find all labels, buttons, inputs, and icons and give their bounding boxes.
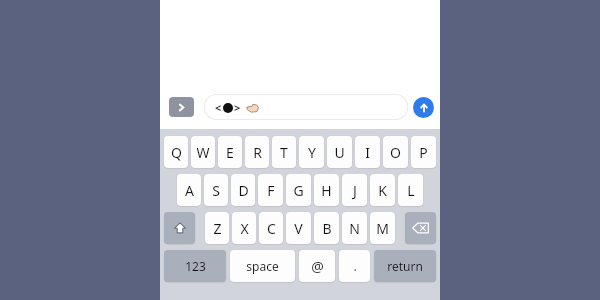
button[interactable]: D bbox=[231, 174, 255, 206]
button[interactable]: Z bbox=[205, 212, 229, 244]
staticText: D bbox=[238, 181, 249, 200]
staticText: B bbox=[322, 219, 332, 238]
button[interactable]: W bbox=[191, 136, 215, 168]
staticText: I bbox=[365, 143, 370, 162]
button[interactable]: F bbox=[258, 174, 283, 206]
button[interactable]: . bbox=[339, 250, 370, 282]
staticText: L bbox=[407, 181, 415, 200]
button[interactable]: C bbox=[259, 212, 283, 244]
staticText: > bbox=[234, 100, 241, 115]
button[interactable]: Q bbox=[164, 136, 188, 168]
button[interactable]: H bbox=[314, 174, 339, 206]
button[interactable]: space bbox=[230, 250, 295, 282]
staticText: K bbox=[378, 181, 387, 200]
button[interactable]: P bbox=[411, 136, 436, 168]
button[interactable]: N bbox=[342, 212, 367, 244]
staticText: S bbox=[212, 181, 220, 200]
button[interactable]: Shift bbox=[164, 212, 195, 244]
button[interactable]: M bbox=[370, 212, 395, 244]
staticText: Z bbox=[213, 219, 222, 238]
button[interactable]: A bbox=[177, 174, 201, 206]
staticText: R bbox=[253, 143, 262, 162]
staticText: @ bbox=[311, 257, 324, 276]
staticText: N bbox=[349, 219, 360, 238]
staticText: < bbox=[215, 100, 222, 115]
button[interactable]: Send bbox=[413, 97, 434, 118]
staticText: . bbox=[353, 258, 357, 274]
staticText: H bbox=[321, 181, 332, 200]
button[interactable]: S bbox=[204, 174, 228, 206]
button[interactable]: L bbox=[398, 174, 423, 206]
staticText: X bbox=[240, 219, 249, 238]
button[interactable]: G bbox=[286, 174, 311, 206]
staticText: Q bbox=[171, 143, 182, 162]
staticText: A bbox=[185, 181, 194, 200]
staticText: T bbox=[280, 143, 288, 162]
button[interactable]: K bbox=[370, 174, 395, 206]
button[interactable]: O bbox=[383, 136, 408, 168]
button[interactable]: R bbox=[245, 136, 269, 168]
staticText: Y bbox=[308, 143, 316, 162]
button[interactable]: Backspace bbox=[405, 212, 436, 244]
staticText: 123 bbox=[185, 258, 206, 274]
staticText: G bbox=[293, 181, 304, 200]
staticText: V bbox=[294, 219, 303, 238]
staticText: W bbox=[196, 143, 210, 162]
button[interactable]: X bbox=[232, 212, 256, 244]
button[interactable]: return bbox=[374, 250, 436, 282]
staticText: J bbox=[353, 181, 357, 200]
button[interactable]: E bbox=[218, 136, 242, 168]
staticText: space bbox=[246, 258, 279, 274]
button[interactable]: @ bbox=[299, 250, 335, 282]
staticText: U bbox=[334, 143, 345, 162]
staticText: O bbox=[390, 143, 401, 162]
staticText: E bbox=[226, 143, 234, 162]
button[interactable]: T bbox=[272, 136, 296, 168]
staticText: M bbox=[376, 219, 389, 238]
staticText: return bbox=[387, 258, 423, 274]
button[interactable]: U bbox=[327, 136, 352, 168]
staticText: C bbox=[267, 219, 276, 238]
button[interactable]: I bbox=[355, 136, 380, 168]
button[interactable]: Expand toolbar bbox=[169, 97, 194, 117]
staticText: P bbox=[419, 143, 428, 162]
button[interactable]: V bbox=[286, 212, 311, 244]
button[interactable]: J bbox=[342, 174, 367, 206]
staticText: F bbox=[267, 181, 275, 200]
button[interactable]: B bbox=[314, 212, 339, 244]
button[interactable]: < bbox=[204, 94, 408, 120]
button[interactable]: 123 bbox=[164, 250, 226, 282]
button[interactable]: Y bbox=[299, 136, 324, 168]
